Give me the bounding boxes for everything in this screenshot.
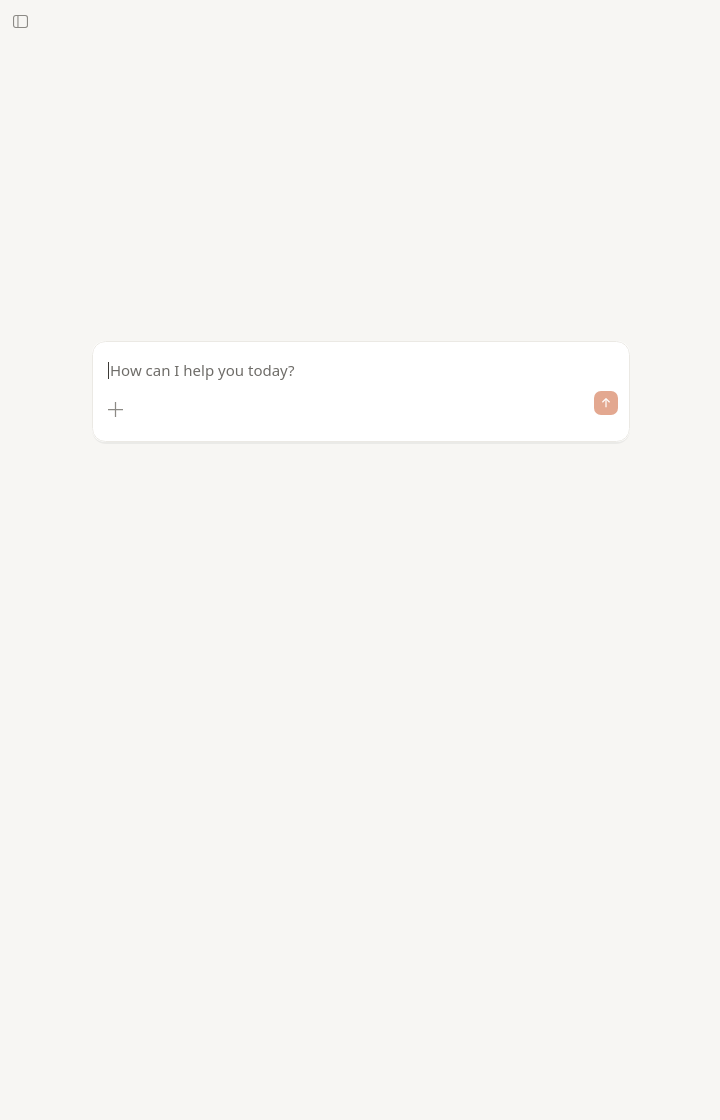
- button[interactable]: Add attachment: [98, 392, 132, 426]
- staticText: How can I help you today?: [110, 360, 295, 380]
- button[interactable]: How can I help you today?: [92, 341, 630, 442]
- button[interactable]: Send message: [594, 391, 618, 415]
- button[interactable]: Toggle sidebar: [4, 5, 36, 37]
